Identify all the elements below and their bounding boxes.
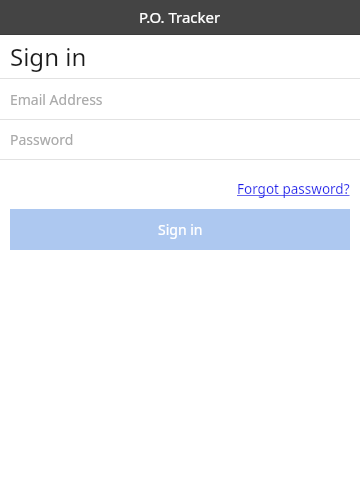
- staticText: Password: [10, 130, 74, 149]
- button[interactable]: Sign in: [10, 209, 350, 250]
- button[interactable]: Email Address: [0, 79, 360, 119]
- staticText: Sign in: [10, 40, 87, 73]
- staticText: Email Address: [10, 90, 103, 109]
- staticText: P.O. Tracker: [139, 7, 221, 27]
- staticText: Sign in: [158, 220, 203, 239]
- button[interactable]: Password: [0, 120, 360, 159]
- staticText: Forgot password?: [237, 180, 350, 198]
- button[interactable]: Forgot password?: [236, 178, 351, 200]
